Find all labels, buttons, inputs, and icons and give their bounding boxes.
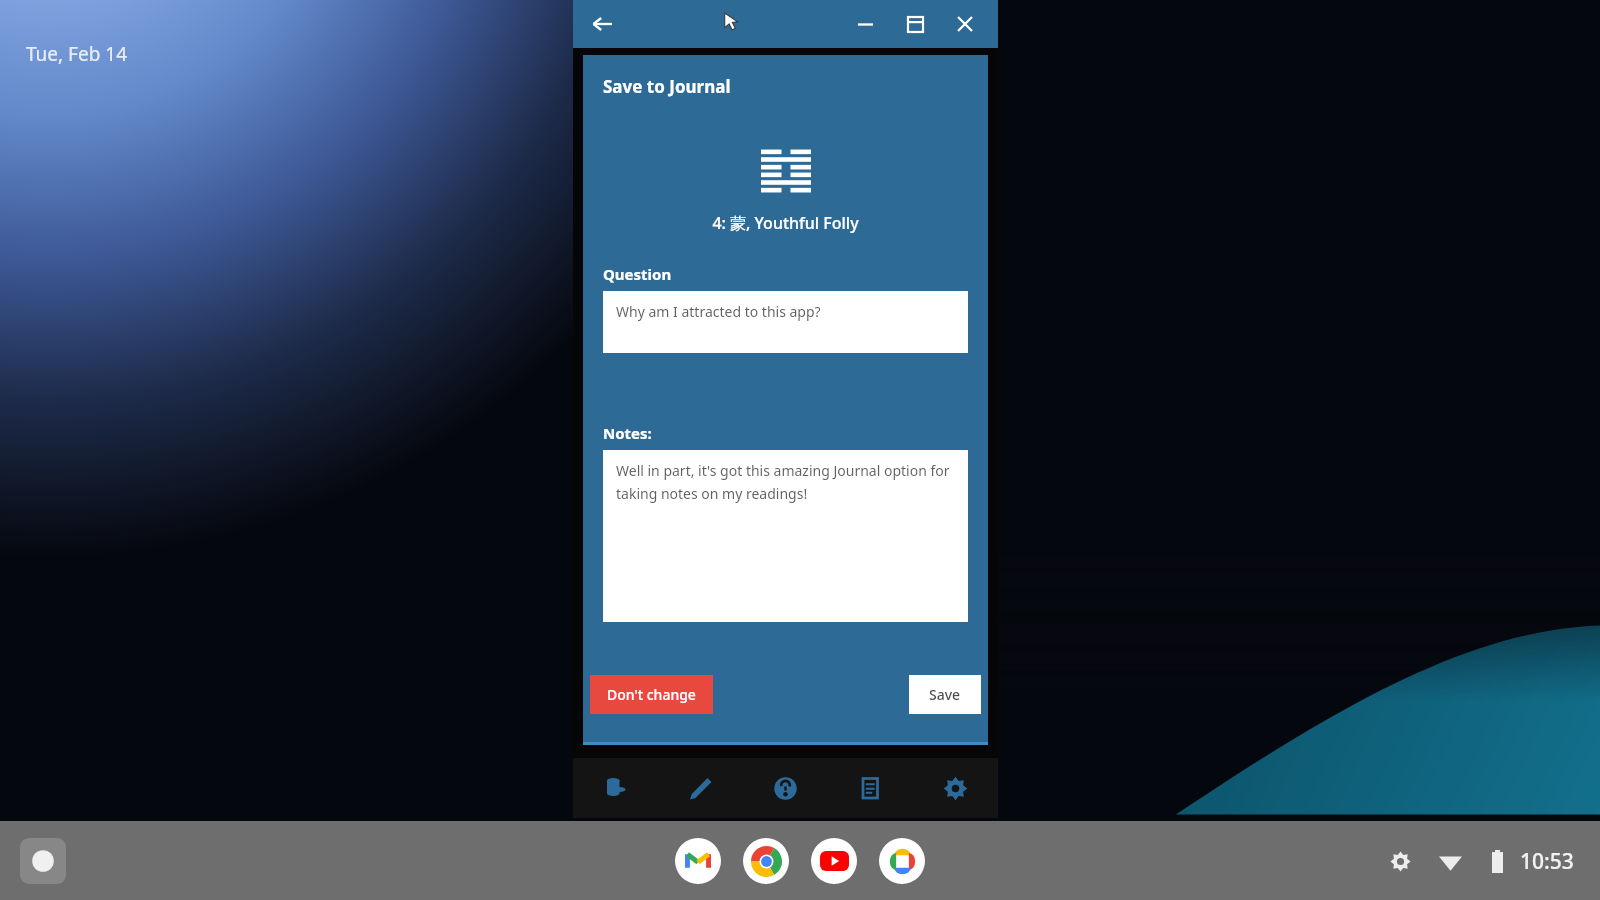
button[interactable]: Chrome [743, 838, 789, 884]
button[interactable]: Cast coins [573, 758, 658, 818]
button[interactable]: Journal [828, 758, 913, 818]
button[interactable]: Gmail [675, 838, 721, 884]
button[interactable]: Maximize [896, 5, 934, 43]
button[interactable]: Why am I attracted to this app? [603, 291, 968, 353]
button[interactable]: Close [946, 5, 984, 43]
button[interactable]: Settings [1380, 841, 1420, 881]
button[interactable]: Launcher [20, 838, 66, 884]
button[interactable]: Save [909, 675, 981, 714]
staticText: Save to Journal [603, 75, 731, 98]
staticText: Tue, Feb 14 [26, 41, 128, 67]
button[interactable]: Minimize [846, 5, 884, 43]
staticText: Don't change [607, 685, 696, 704]
staticText: Question [603, 264, 672, 284]
button[interactable]: Settings [913, 758, 998, 818]
staticText: 4: 蒙, Youthful Folly [603, 212, 968, 234]
button[interactable]: Don't change [590, 675, 713, 714]
button[interactable]: Help [743, 758, 828, 818]
button[interactable]: Google Photos [879, 838, 925, 884]
button[interactable]: Back [583, 5, 621, 43]
staticText: 10:53 [1520, 847, 1574, 876]
button[interactable]: Battery [1482, 846, 1512, 876]
button[interactable]: Edit [658, 758, 743, 818]
staticText: Save [929, 685, 961, 704]
staticText: Well in part, it's got this amazing Jour… [616, 461, 956, 503]
staticText: Why am I attracted to this app? [616, 302, 821, 321]
button[interactable]: YouTube [811, 838, 857, 884]
staticText: Notes: [603, 423, 652, 443]
button[interactable]: Well in part, it's got this amazing Jour… [603, 450, 968, 622]
button[interactable]: Wi-Fi [1430, 841, 1470, 881]
